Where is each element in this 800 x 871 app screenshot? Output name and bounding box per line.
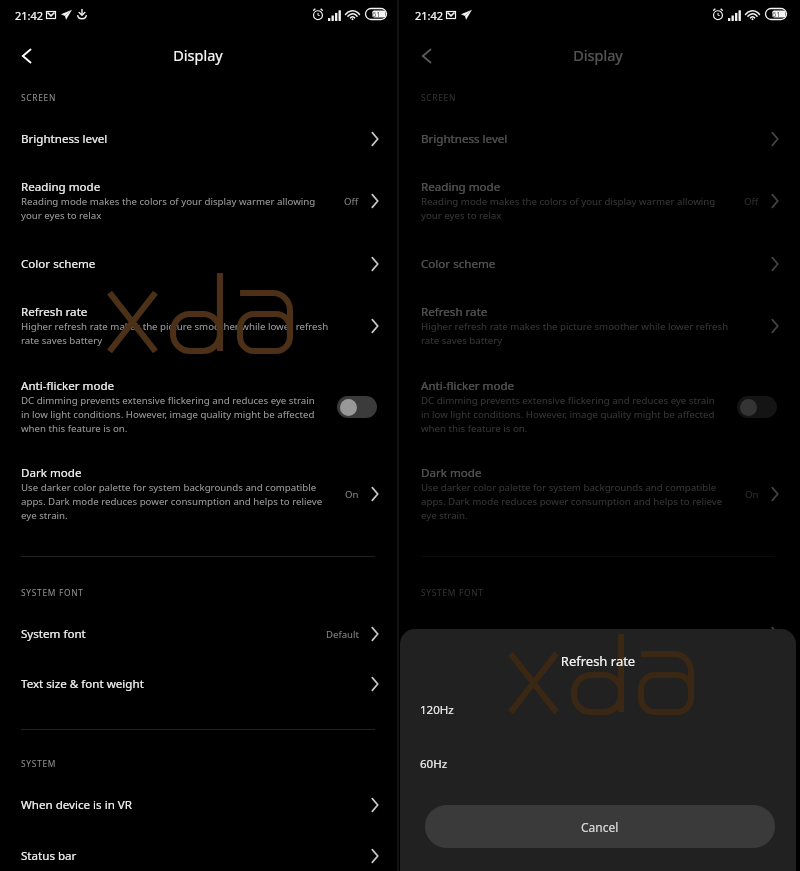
staticText: Refresh rate — [421, 304, 488, 320]
button[interactable] — [0, 294, 396, 360]
staticText: On — [745, 488, 759, 501]
staticText: Cancel — [581, 819, 619, 835]
staticText: SYSTEM — [421, 758, 457, 769]
staticText: System font — [21, 626, 86, 642]
button[interactable]: Back — [9, 38, 44, 73]
staticText: Refresh rate — [21, 304, 88, 320]
staticText: Off — [344, 195, 359, 208]
staticText: Text size & font weight — [21, 676, 144, 692]
staticText: Text size & font weight — [421, 676, 544, 692]
button[interactable]: Cancel — [425, 805, 775, 848]
staticText: System font — [421, 626, 486, 642]
button[interactable] — [400, 787, 796, 823]
staticText: 61 — [372, 9, 381, 19]
button[interactable] — [400, 246, 796, 282]
button[interactable] — [400, 455, 796, 528]
button[interactable] — [400, 368, 796, 441]
button[interactable] — [0, 455, 396, 528]
button[interactable] — [400, 616, 796, 652]
staticText: Dark mode — [21, 465, 82, 481]
staticText: Reading mode makes the colors of your di… — [21, 195, 324, 222]
staticText: Display — [400, 45, 796, 65]
staticText: Reading mode — [421, 179, 501, 195]
button[interactable] — [0, 838, 396, 871]
staticText: SCREEN — [421, 92, 457, 103]
staticText: Color scheme — [21, 256, 96, 272]
button[interactable]: 120Hz — [400, 689, 796, 729]
button[interactable] — [0, 666, 396, 702]
button[interactable] — [0, 616, 396, 652]
staticText: Use darker color palette for system back… — [21, 481, 324, 522]
button[interactable] — [400, 169, 796, 235]
button[interactable] — [0, 246, 396, 282]
staticText: 21:42 — [415, 8, 444, 23]
staticText: Reading mode makes the colors of your di… — [421, 195, 724, 222]
staticText: Brightness level — [21, 131, 108, 147]
staticText: SCREEN — [21, 92, 57, 103]
staticText: Higher refresh rate makes the picture sm… — [421, 320, 736, 347]
staticText: Color scheme — [421, 256, 496, 272]
staticText: Display — [0, 45, 396, 65]
staticText: When device is in VR — [21, 797, 132, 813]
button[interactable] — [0, 121, 396, 157]
button[interactable] — [0, 787, 396, 823]
staticText: SYSTEM FONT — [21, 587, 84, 598]
button[interactable]: Toggle — [737, 396, 777, 418]
staticText: Default — [326, 628, 359, 641]
staticText: Higher refresh rate makes the picture sm… — [21, 320, 336, 347]
staticText: 21:42 — [15, 8, 44, 23]
button[interactable] — [0, 169, 396, 235]
staticText: Status bar — [21, 848, 77, 864]
staticText: Use darker color palette for system back… — [421, 481, 724, 522]
staticText: Default — [726, 628, 759, 641]
button[interactable] — [400, 666, 796, 702]
staticText: 61 — [772, 9, 781, 19]
button[interactable] — [400, 121, 796, 157]
staticText: On — [345, 488, 359, 501]
staticText: SYSTEM FONT — [421, 587, 484, 598]
staticText: 60Hz — [420, 756, 448, 772]
staticText: 120Hz — [420, 702, 454, 718]
staticText: Reading mode — [21, 179, 101, 195]
staticText: DC dimming prevents extensive flickering… — [21, 394, 324, 435]
button[interactable] — [400, 294, 796, 360]
staticText: Anti-flicker mode — [21, 378, 115, 394]
button[interactable]: 60Hz — [400, 743, 796, 783]
staticText: DC dimming prevents extensive flickering… — [421, 394, 724, 435]
staticText: Dark mode — [421, 465, 482, 481]
staticText: Refresh rate — [400, 652, 796, 670]
staticText: SYSTEM — [21, 758, 57, 769]
staticText: Off — [744, 195, 759, 208]
button[interactable]: Back — [409, 38, 444, 73]
staticText: Brightness level — [421, 131, 508, 147]
staticText: When device is in VR — [421, 797, 532, 813]
button[interactable]: Toggle — [337, 396, 377, 418]
staticText: Anti-flicker mode — [421, 378, 515, 394]
button[interactable] — [0, 368, 396, 441]
button[interactable] — [400, 838, 796, 871]
